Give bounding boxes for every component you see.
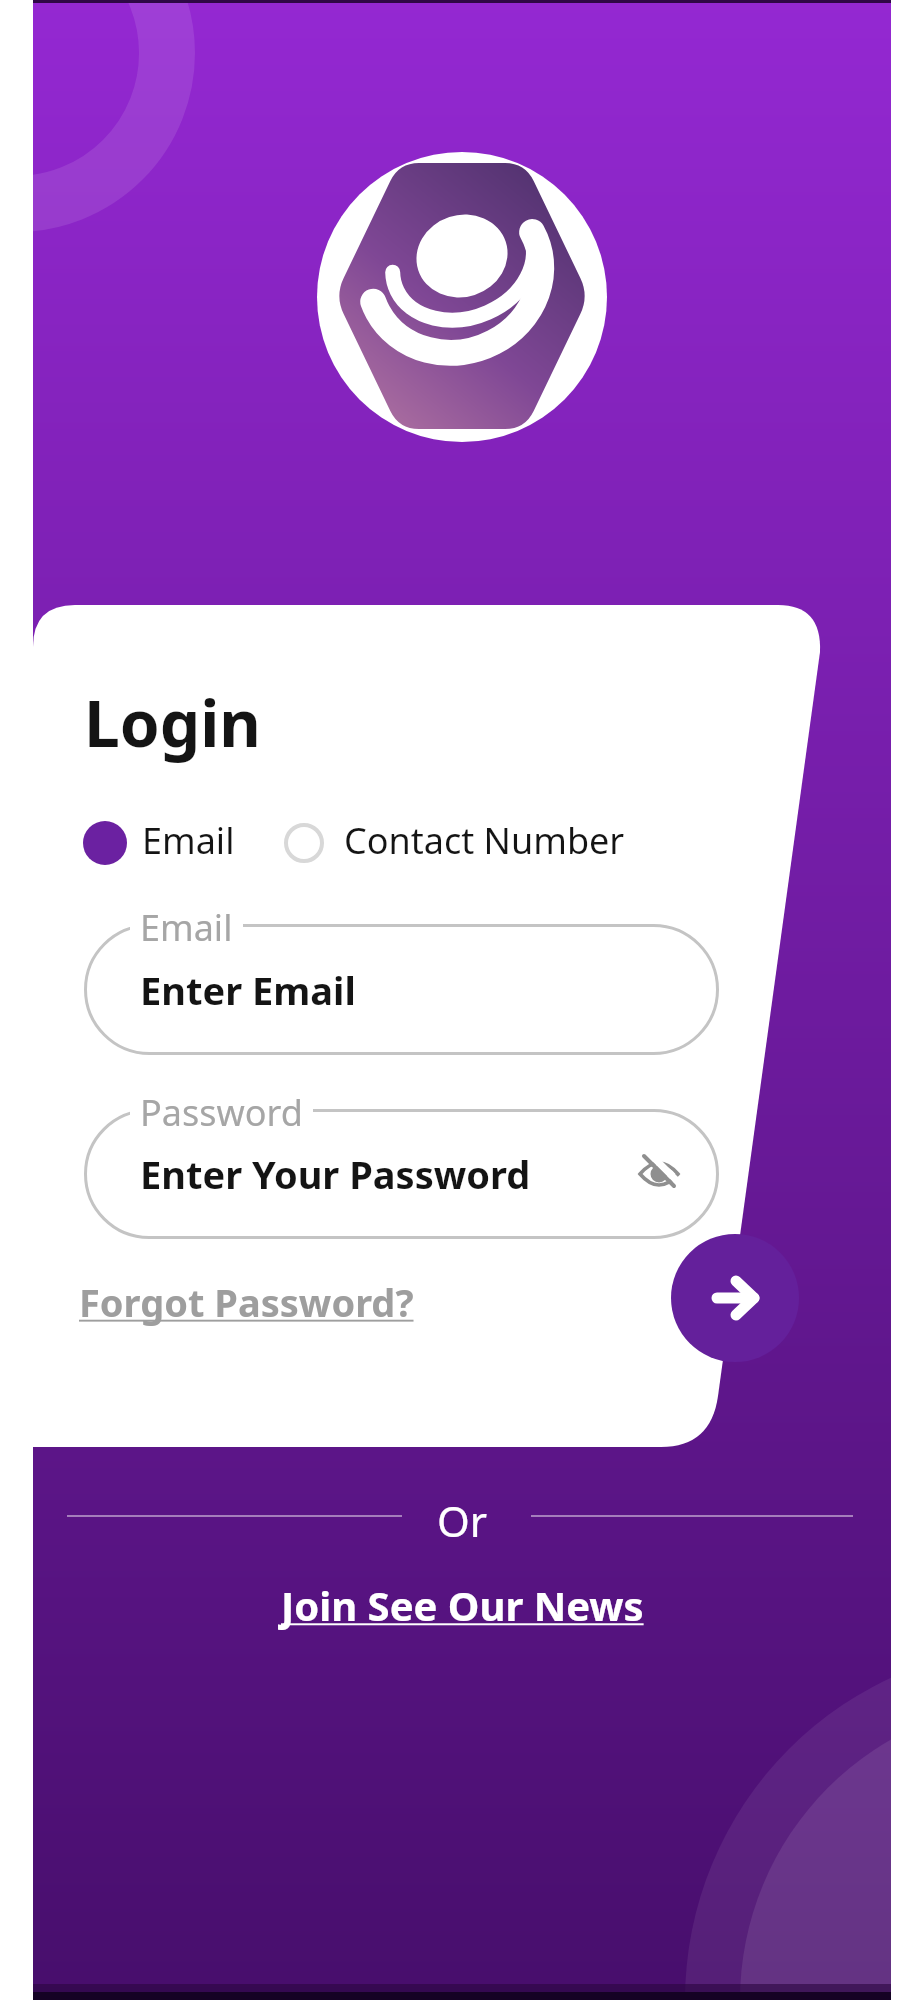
- button[interactable]: Enter Your Password: [84, 1109, 719, 1239]
- button[interactable]: [671, 1234, 799, 1362]
- button[interactable]: Contact Number: [280, 816, 625, 865]
- staticText: Password: [140, 1088, 303, 1137]
- staticText: Or: [437, 1492, 488, 1549]
- staticText: Contact Number: [344, 816, 625, 865]
- staticText: Email: [142, 816, 235, 865]
- staticText: Email: [140, 903, 233, 952]
- staticText: Login: [84, 679, 261, 766]
- button[interactable]: Forgot Password?: [79, 1276, 414, 1328]
- staticText: Enter Email: [140, 964, 356, 1016]
- button[interactable]: Enter Email: [84, 924, 719, 1055]
- button[interactable]: Join See Our News: [281, 1578, 644, 1632]
- staticText: Enter Your Password: [140, 1148, 531, 1200]
- button[interactable]: Email: [80, 816, 235, 865]
- button[interactable]: [638, 1154, 680, 1194]
